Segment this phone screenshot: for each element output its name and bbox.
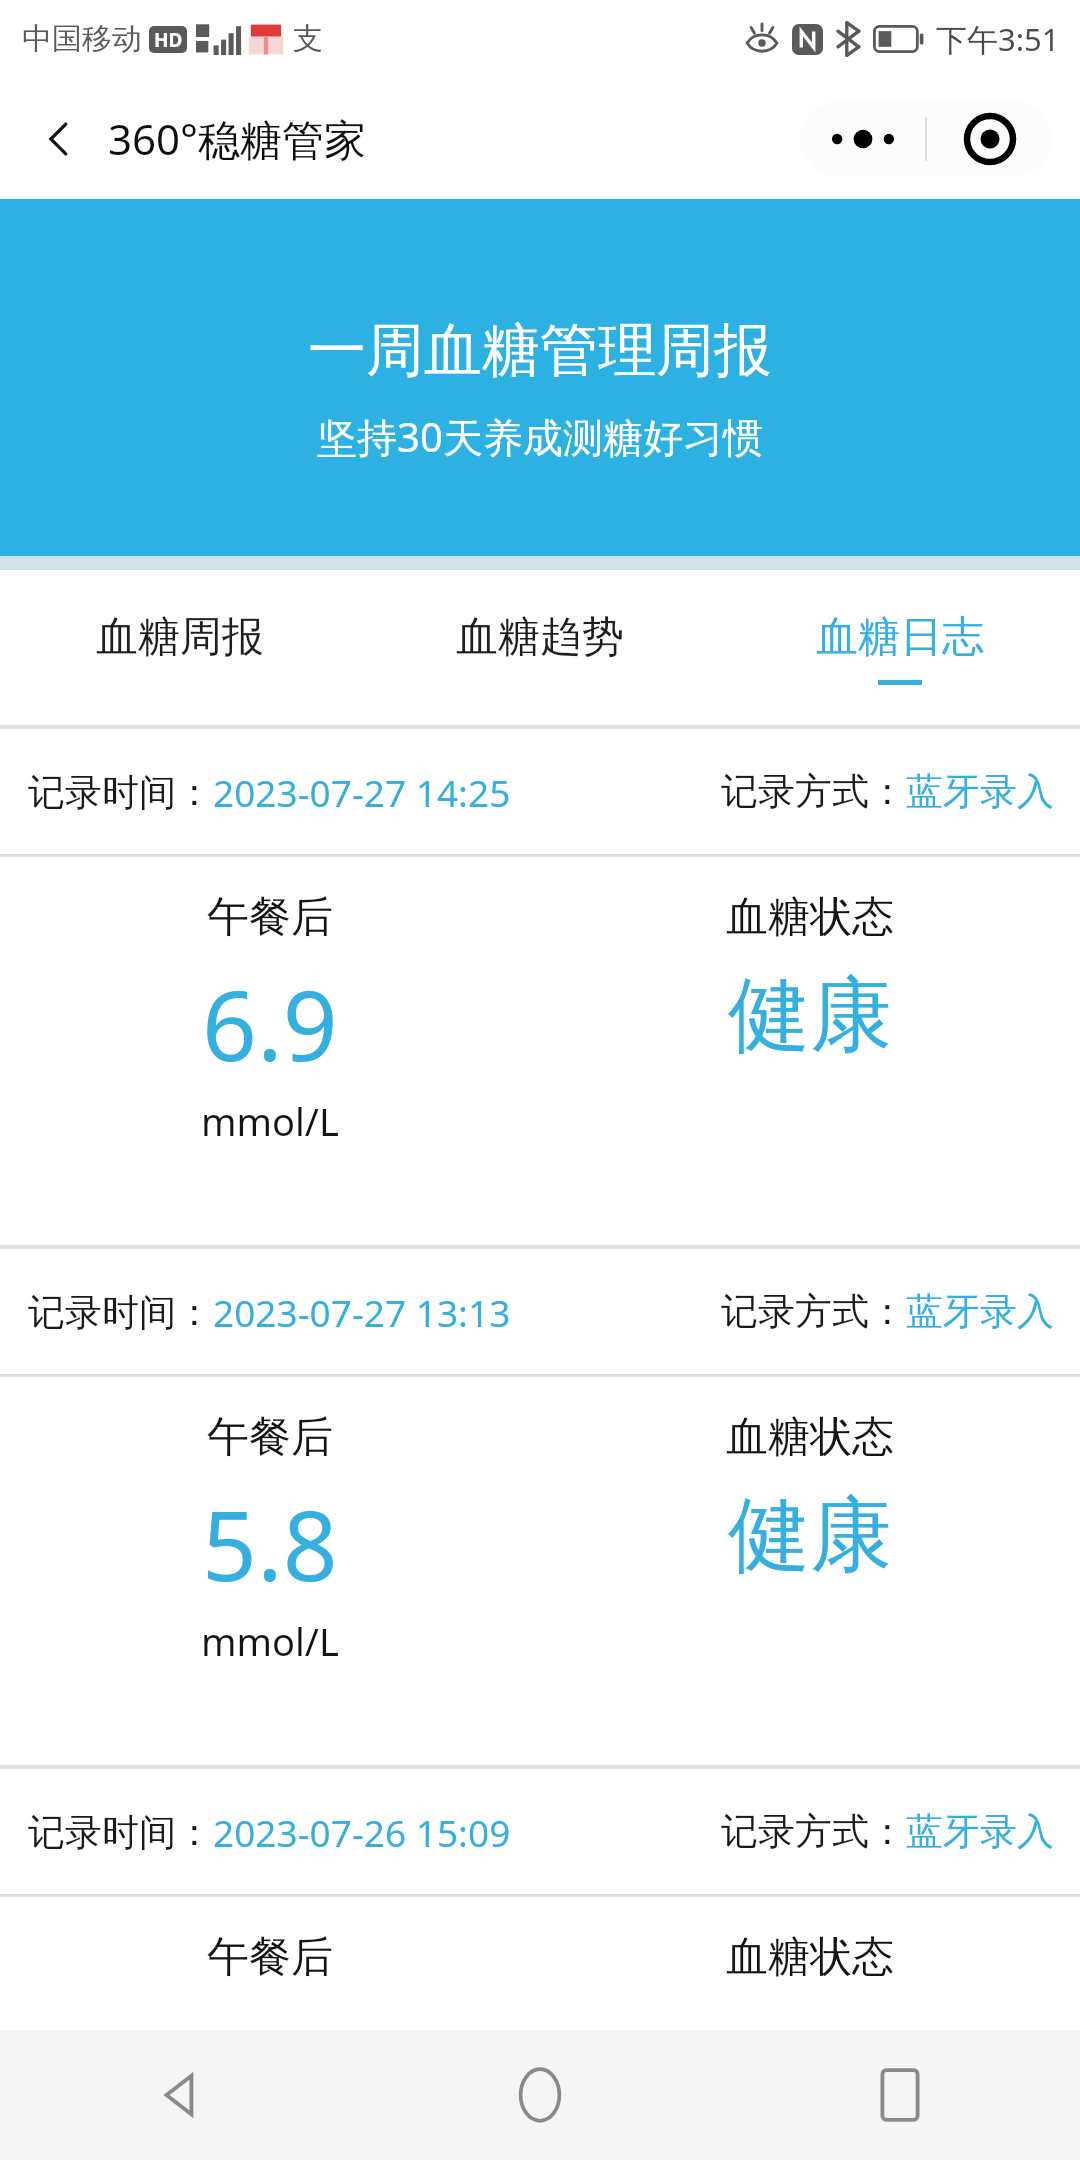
- staticText: 下午3:51: [936, 18, 1060, 60]
- staticText: 记录方式：: [721, 1808, 906, 1855]
- staticText: 午餐后: [207, 1411, 333, 1464]
- staticText: 血糖状态: [726, 891, 894, 944]
- staticText: 记录时间：: [28, 769, 213, 816]
- button[interactable]: 血糖周报: [0, 570, 360, 725]
- staticText: 360°稳糖管家: [108, 110, 367, 167]
- staticText: 2023-07-27 13:13: [213, 1287, 511, 1337]
- staticText: 血糖周报: [96, 611, 264, 664]
- staticText: 记录方式：: [721, 768, 906, 815]
- button[interactable]: More: [800, 101, 925, 177]
- button[interactable]: Close mini program: [927, 101, 1052, 177]
- staticText: 蓝牙录入: [906, 768, 1054, 815]
- staticText: 午餐后: [207, 1931, 333, 1984]
- button[interactable]: Back: [26, 106, 92, 172]
- button[interactable]: 记录时间：: [0, 1249, 1080, 1374]
- staticText: 血糖状态: [726, 1411, 894, 1464]
- button[interactable]: Home: [360, 2030, 720, 2160]
- staticText: 2023-07-27 14:25: [213, 767, 511, 817]
- staticText: 健康: [728, 1484, 892, 1587]
- staticText: 健康: [728, 964, 892, 1067]
- staticText: 血糖日志: [816, 611, 984, 664]
- staticText: 记录时间：: [28, 1289, 213, 1336]
- staticText: mmol/L: [201, 1095, 339, 1147]
- staticText: 蓝牙录入: [906, 1808, 1054, 1855]
- staticText: 6.9: [202, 958, 338, 1089]
- staticText: 蓝牙录入: [906, 1288, 1054, 1335]
- staticText: 2023-07-26 15:09: [213, 1807, 511, 1857]
- button[interactable]: 血糖趋势: [360, 570, 720, 725]
- button[interactable]: Back: [0, 2030, 360, 2160]
- button[interactable]: 记录时间：: [0, 1769, 1080, 1894]
- staticText: 5.8: [202, 1478, 338, 1609]
- staticText: HD: [154, 27, 183, 53]
- staticText: 记录方式：: [721, 1288, 906, 1335]
- staticText: 坚持30天养成测糖好习惯: [317, 409, 763, 464]
- staticText: 中国移动: [22, 20, 142, 58]
- staticText: mmol/L: [201, 1615, 339, 1667]
- staticText: 记录时间：: [28, 1809, 213, 1856]
- staticText: 午餐后: [207, 891, 333, 944]
- button[interactable]: Recents: [720, 2030, 1080, 2160]
- staticText: 血糖状态: [726, 1931, 894, 1984]
- button[interactable]: 午餐后: [0, 857, 1080, 1245]
- button[interactable]: 记录时间：: [0, 729, 1080, 854]
- button[interactable]: 午餐后: [0, 1377, 1080, 1765]
- button[interactable]: 血糖日志: [720, 570, 1080, 725]
- staticText: 支: [293, 20, 323, 58]
- staticText: 血糖趋势: [456, 611, 624, 664]
- button[interactable]: 午餐后: [0, 1897, 1080, 2017]
- staticText: 一周血糖管理周报: [308, 314, 772, 387]
